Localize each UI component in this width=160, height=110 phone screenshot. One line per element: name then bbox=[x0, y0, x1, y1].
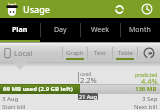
staticText: Plan bbox=[12, 25, 28, 35]
staticText: Local bbox=[14, 48, 33, 58]
staticText: Week bbox=[91, 25, 110, 35]
staticText: 4.4% bbox=[141, 76, 158, 86]
staticText: 3 Aug bbox=[2, 95, 19, 103]
staticText: Graph bbox=[66, 49, 84, 57]
staticText: 3 Sep bbox=[142, 95, 158, 103]
staticText: predicted bbox=[135, 72, 158, 79]
button[interactable]: Day bbox=[40, 18, 80, 42]
button[interactable]: Month bbox=[120, 18, 160, 42]
button[interactable]: History bbox=[138, 0, 156, 18]
staticText: Day bbox=[54, 25, 67, 35]
staticText: 136 MB bbox=[135, 85, 157, 93]
staticText: Month bbox=[129, 25, 151, 35]
staticText: used bbox=[80, 71, 92, 78]
staticText: 21 Aug bbox=[79, 93, 98, 100]
staticText: Start bill bbox=[2, 103, 26, 110]
staticText: 69 MB used (2.9 GB left) bbox=[3, 85, 73, 93]
staticText: Next bill bbox=[134, 103, 158, 110]
staticText: 2.2% bbox=[80, 75, 97, 85]
button[interactable]: Week bbox=[80, 18, 120, 42]
button[interactable]: Local bbox=[0, 43, 37, 62]
button[interactable]: Graph bbox=[63, 43, 87, 62]
staticText: Table bbox=[118, 49, 133, 57]
button[interactable]: Speed bbox=[138, 43, 160, 62]
staticText: Usage bbox=[23, 3, 50, 15]
button[interactable]: Plan bbox=[0, 18, 40, 42]
button[interactable]: Table bbox=[113, 43, 137, 62]
staticText: Text bbox=[94, 49, 106, 57]
button[interactable]: Refresh bbox=[110, 0, 128, 18]
button[interactable]: Text bbox=[88, 43, 112, 62]
